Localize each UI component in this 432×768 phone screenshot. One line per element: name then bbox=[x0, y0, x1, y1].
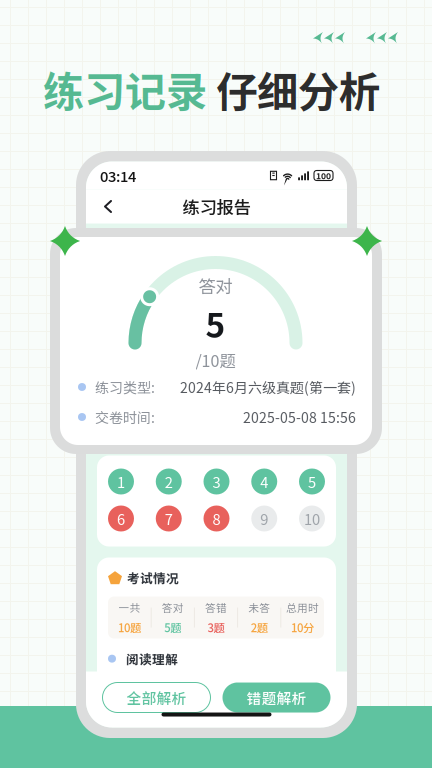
staticText: 答对 bbox=[198, 273, 232, 298]
staticText: 100 bbox=[316, 169, 331, 182]
staticText: 2024年6月六级真题(第一套) bbox=[180, 377, 356, 397]
staticText: 练习记录 bbox=[43, 59, 207, 119]
staticText: 阅读理解 bbox=[126, 649, 178, 668]
staticText: 8 bbox=[212, 508, 220, 529]
staticText: 9 bbox=[260, 508, 268, 529]
button[interactable]: 全部解析 bbox=[102, 682, 210, 712]
button[interactable]: 10 bbox=[299, 505, 325, 531]
staticText: 全部解析 bbox=[126, 687, 186, 708]
button[interactable]: 6 bbox=[108, 505, 134, 531]
staticText: 5 bbox=[308, 471, 316, 492]
button[interactable]: 9 bbox=[251, 505, 277, 531]
button[interactable]: 5 bbox=[299, 468, 325, 494]
staticText: 答错 bbox=[205, 600, 227, 615]
staticText: 交卷时间: bbox=[95, 407, 155, 427]
staticText: 5题 bbox=[164, 619, 181, 635]
staticText: 10题 bbox=[118, 619, 141, 635]
staticText: 练习报告 bbox=[182, 194, 250, 219]
staticText: 3 bbox=[212, 471, 220, 492]
staticText: 未答 bbox=[248, 600, 270, 615]
button[interactable]: 2 bbox=[156, 468, 182, 494]
staticText: 2 bbox=[165, 471, 173, 492]
button[interactable]: 8 bbox=[203, 505, 229, 531]
button[interactable]: 4 bbox=[251, 468, 277, 494]
staticText: 10分 bbox=[291, 619, 314, 635]
staticText: 3题 bbox=[207, 619, 224, 635]
staticText: 5 bbox=[205, 299, 225, 347]
staticText: 一共 bbox=[119, 600, 141, 615]
button[interactable]: Back bbox=[92, 189, 124, 223]
staticText: 2025-05-08 15:56 bbox=[243, 407, 356, 427]
staticText: 错题解析 bbox=[246, 687, 306, 708]
staticText: 总用时 bbox=[286, 600, 319, 615]
staticText: 03:14 bbox=[100, 165, 136, 186]
staticText: 2题 bbox=[251, 619, 268, 635]
staticText: 10 bbox=[304, 508, 320, 529]
staticText: 答对 bbox=[162, 600, 184, 615]
staticText: 4 bbox=[260, 471, 268, 492]
staticText: 仔细分析 bbox=[207, 59, 380, 119]
button[interactable]: 7 bbox=[156, 505, 182, 531]
button[interactable]: 3 bbox=[203, 468, 229, 494]
staticText: 练习类型: bbox=[95, 377, 155, 397]
staticText: 6 bbox=[117, 508, 125, 529]
button[interactable]: 错题解析 bbox=[222, 682, 330, 712]
staticText: 7 bbox=[165, 508, 173, 529]
staticText: /10题 bbox=[195, 348, 235, 372]
staticText: 考试情况 bbox=[127, 568, 179, 587]
button[interactable]: 1 bbox=[108, 468, 134, 494]
staticText: 1 bbox=[117, 471, 125, 492]
